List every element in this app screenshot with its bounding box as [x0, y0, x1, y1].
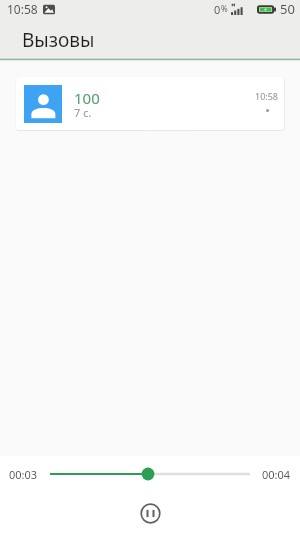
staticText: %	[221, 3, 228, 14]
button[interactable]: Pause	[135, 498, 165, 528]
staticText: 7 с.	[74, 105, 92, 120]
button[interactable]: Вызовы	[0, 21, 300, 58]
staticText: 0	[214, 2, 221, 17]
staticText: 00:04	[262, 467, 291, 482]
button[interactable]: 100	[16, 77, 284, 130]
staticText: 10:58	[255, 90, 279, 102]
staticText: 10:58	[7, 1, 38, 17]
staticText: 100	[74, 88, 100, 108]
staticText: Вызовы	[22, 27, 95, 53]
staticText: 50	[280, 0, 295, 18]
staticText: 00:03	[9, 467, 38, 482]
